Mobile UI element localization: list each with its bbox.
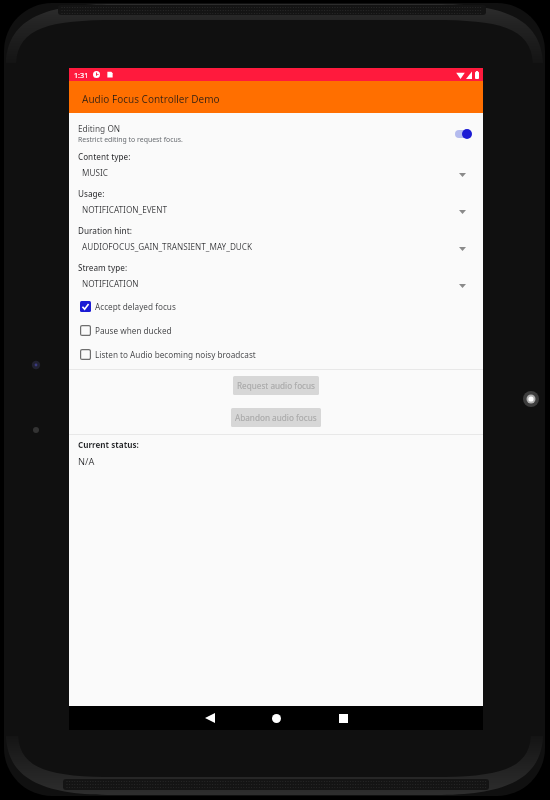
staticText: NOTIFICATION (82, 278, 459, 289)
staticText: Usage: (78, 188, 105, 199)
staticText: Stream type: (78, 262, 128, 273)
staticText: Editing ON (78, 123, 121, 134)
button[interactable]: Editing ON (78, 123, 472, 144)
staticText: Accept delayed focus (95, 301, 176, 312)
button[interactable]: Home (243, 706, 310, 730)
button[interactable]: Audio Focus Controller Demo (69, 81, 483, 113)
button[interactable]: Abandon audio focus (231, 408, 321, 427)
staticText: AUDIOFOCUS_GAIN_TRANSIENT_MAY_DUCK (82, 241, 459, 252)
staticText: MUSIC (82, 167, 459, 178)
staticText: Abandon audio focus (235, 412, 317, 423)
button[interactable]: Content type: (69, 151, 483, 188)
button[interactable]: Accept delayed focus (80, 294, 483, 318)
button[interactable]: Back (176, 706, 243, 730)
button[interactable]: Pause when ducked (80, 318, 483, 342)
staticText: Current status: (78, 439, 139, 450)
button[interactable]: Request audio focus (233, 376, 319, 395)
staticText: 1:31 (74, 70, 89, 80)
button[interactable]: Editing toggle (452, 127, 472, 141)
staticText: N/A (78, 455, 95, 468)
staticText: NOTIFICATION_EVENT (82, 204, 459, 215)
button[interactable]: Stream type: (69, 262, 483, 294)
staticText: Pause when ducked (95, 325, 172, 336)
staticText: Audio Focus Controller Demo (82, 92, 220, 106)
button[interactable]: Duration hint: (69, 225, 483, 262)
staticText: Duration hint: (78, 225, 132, 236)
button[interactable]: Usage: (69, 188, 483, 225)
button[interactable]: Recents (310, 706, 377, 730)
staticText: Listen to Audio becoming noisy broadcast (95, 349, 256, 360)
staticText: Content type: (78, 151, 131, 162)
staticText: Request audio focus (237, 380, 315, 391)
staticText: Restrict editing to request focus. (78, 135, 183, 144)
button[interactable]: Listen to Audio becoming noisy broadcast (80, 342, 483, 366)
